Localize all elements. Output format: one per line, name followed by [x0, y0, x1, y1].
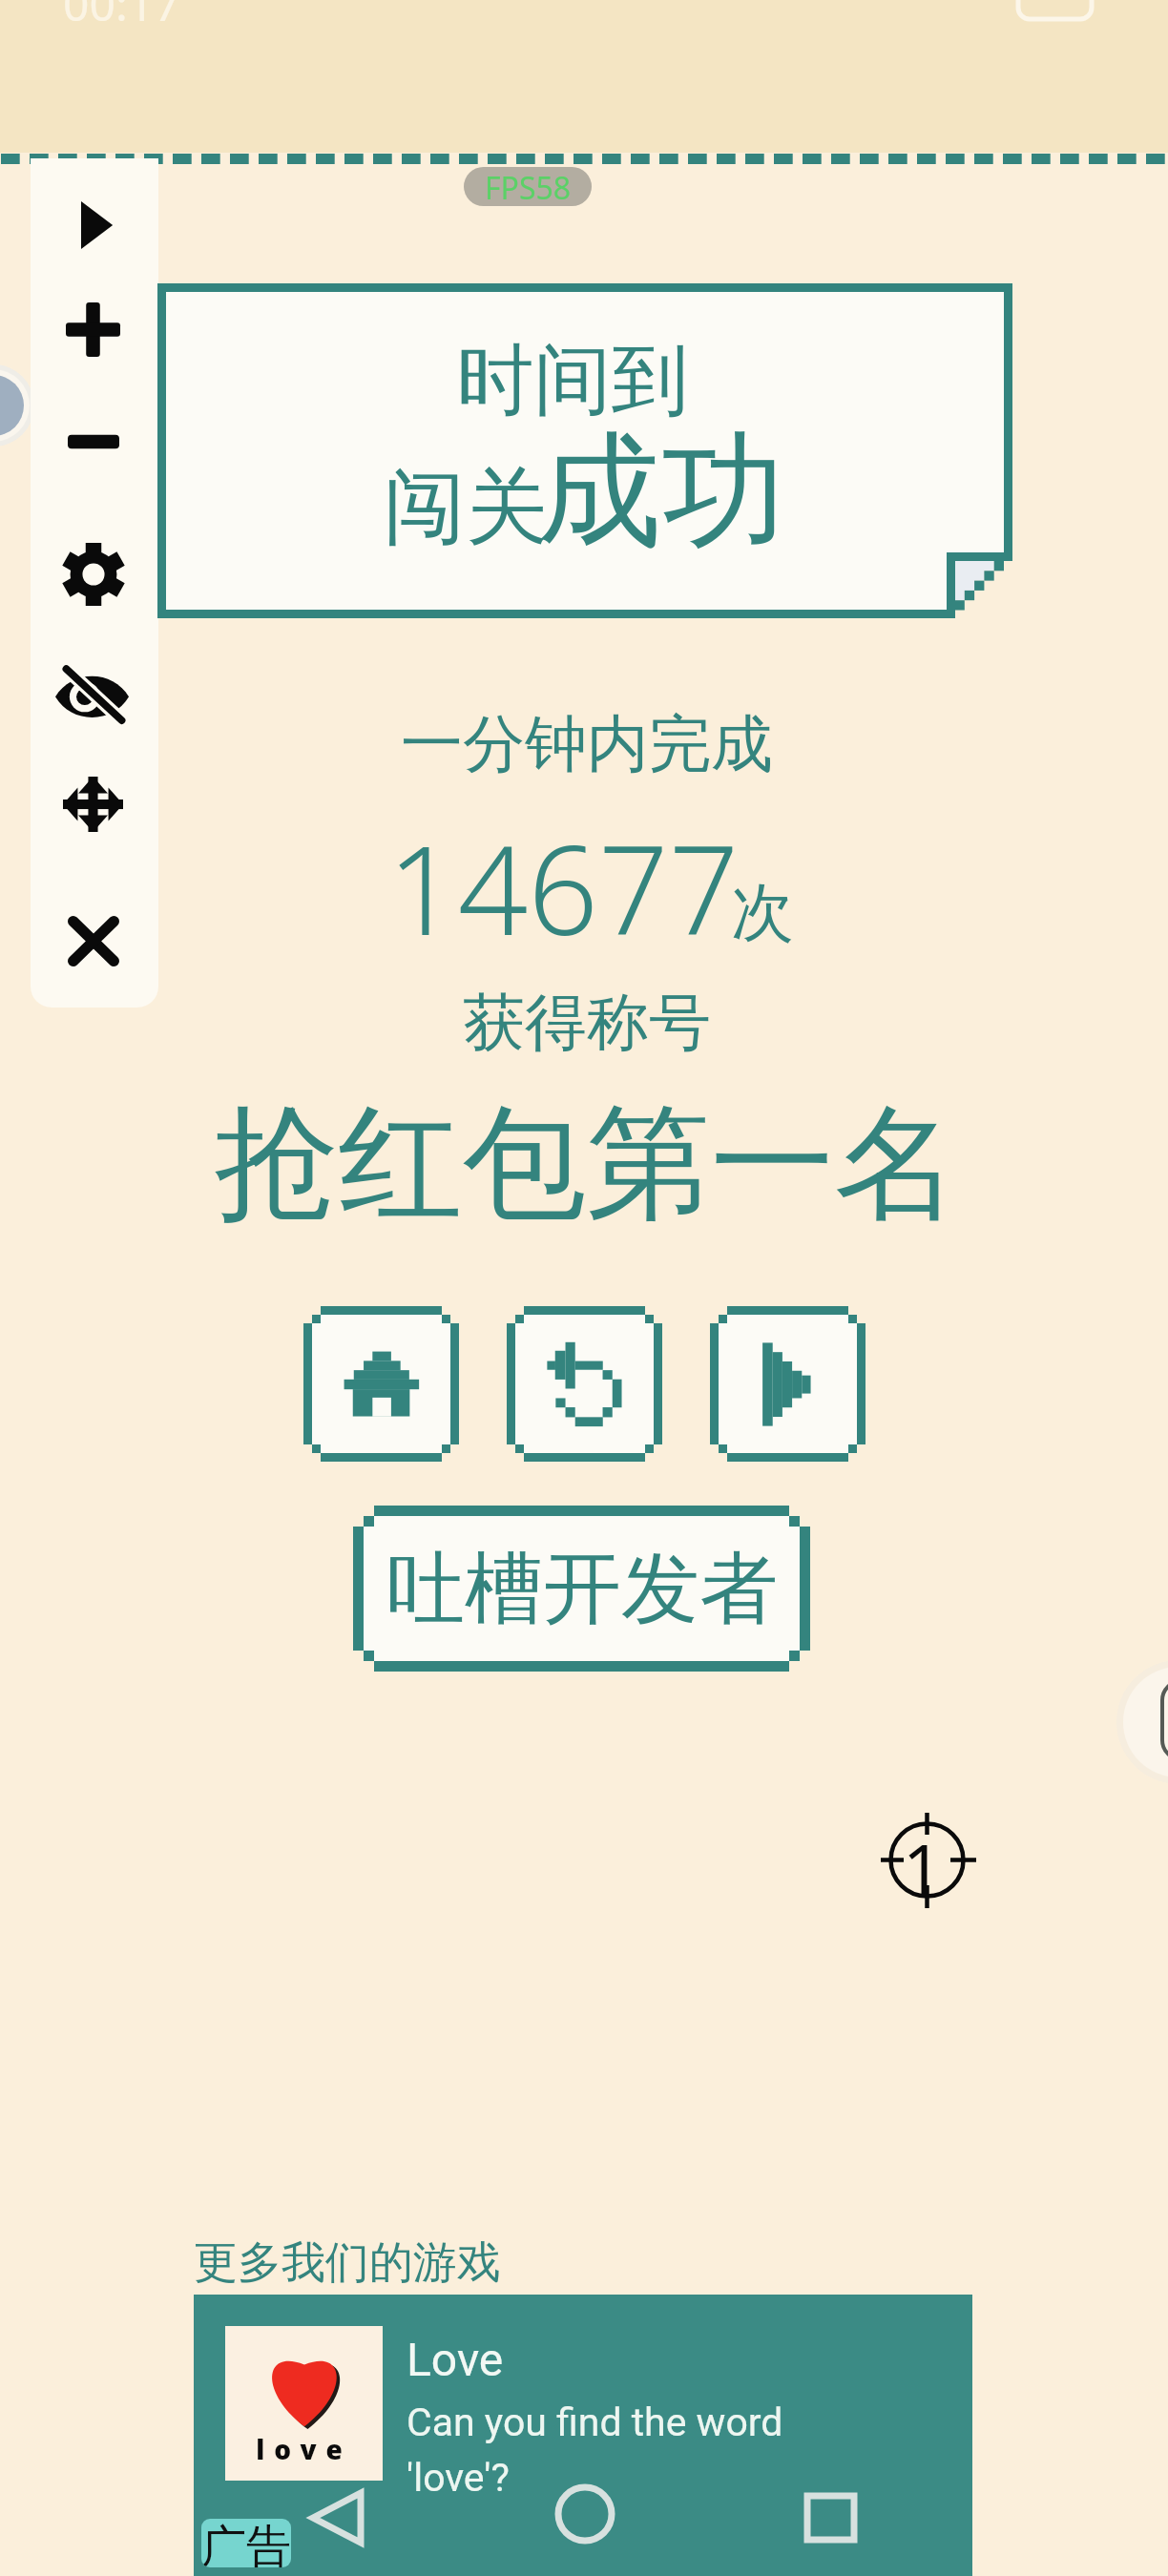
button[interactable]: Zoom in — [48, 284, 139, 376]
staticText: 更多我们的游戏 — [194, 2235, 501, 2291]
button[interactable]: Settings — [48, 529, 139, 620]
button[interactable]: Play — [48, 179, 139, 271]
staticText: 1 — [903, 1820, 943, 1914]
staticText: 14677 — [387, 803, 740, 971]
staticText: FPS58 — [485, 167, 572, 206]
button[interactable]: Move — [48, 758, 139, 850]
staticText: love — [225, 2431, 383, 2467]
button[interactable]: 吐槽开发者 — [353, 1506, 810, 1672]
staticText: 成功 — [537, 414, 785, 571]
staticText: 次 — [731, 873, 794, 952]
staticText: Love — [407, 2333, 504, 2386]
staticText: Can you find the word 'love'? — [407, 2399, 783, 2501]
staticText: 吐槽开发者 — [386, 1540, 778, 1638]
staticText: 时间到 — [145, 332, 1000, 429]
button[interactable]: Restart — [507, 1306, 662, 1462]
button[interactable]: Assistant — [1116, 1660, 1168, 1786]
staticText: 一分钟内完成 — [6, 705, 1168, 783]
staticText: 00:17 — [63, 0, 180, 34]
button[interactable]: Zoom out — [48, 396, 139, 488]
button[interactable]: Hide — [48, 647, 139, 738]
staticText: 获得称号 — [6, 984, 1168, 1062]
button[interactable]: love — [194, 2295, 972, 2576]
staticText: 抢红包第一名 — [5, 1087, 1168, 1243]
button[interactable]: Home — [303, 1306, 459, 1462]
staticText: 闯关 — [384, 456, 548, 559]
button[interactable]: Close — [48, 896, 139, 987]
button[interactable]: Next — [710, 1306, 866, 1462]
staticText: 广告 — [201, 2519, 291, 2567]
